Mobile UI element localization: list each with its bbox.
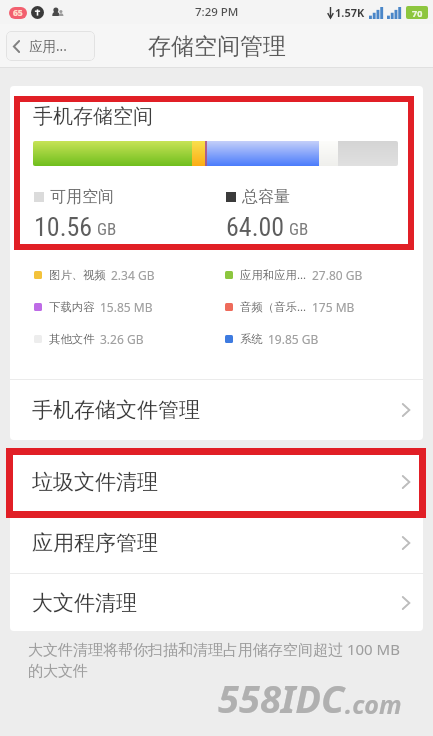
staticText: 27.80 GB [312, 267, 363, 283]
staticText: 系统 [240, 332, 263, 346]
staticText: 1.57K [335, 5, 365, 20]
staticText: 存储空间管理 [148, 32, 286, 61]
staticText: 可用空间 [50, 187, 114, 207]
staticText: 558IDC [218, 672, 345, 724]
staticText: 19.85 GB [268, 331, 319, 347]
staticText: GB [289, 219, 309, 239]
staticText: 下载内容 [49, 300, 95, 314]
button[interactable]: 垃圾文件清理 [10, 452, 423, 512]
button[interactable]: 应用程序管理 [10, 513, 423, 573]
staticText: 其他文件 [49, 332, 95, 346]
staticText: 手机存储文件管理 [32, 397, 200, 423]
staticText: 垃圾文件清理 [32, 469, 158, 495]
staticText: 图片、视频 [49, 268, 106, 282]
staticText: 应用... [29, 37, 67, 55]
staticText: 2.34 GB [111, 267, 155, 283]
staticText: 应用和应用... [240, 267, 307, 283]
staticText: 应用程序管理 [32, 530, 158, 556]
staticText: 7:29 PM [195, 4, 239, 20]
staticText: 65 [13, 7, 23, 19]
staticText: .com [345, 687, 402, 721]
staticText: 10.56 [34, 212, 93, 242]
staticText: 15.85 MB [100, 299, 153, 315]
staticText: 总容量 [242, 187, 290, 207]
staticText: 音频（音乐... [240, 299, 307, 315]
button[interactable]: 应用... [6, 31, 95, 61]
staticText: 175 MB [312, 299, 355, 315]
staticText: 大文件清理将帮你扫描和清理占用储存空间超过 100 MB 的大文件 [28, 639, 413, 680]
button[interactable]: 大文件清理 [10, 574, 423, 631]
staticText: 3.26 GB [100, 331, 144, 347]
staticText: 手机存储空间 [33, 104, 153, 129]
staticText: 64.00 [226, 212, 285, 242]
button[interactable]: 手机存储文件管理 [10, 380, 423, 440]
staticText: 大文件清理 [32, 590, 137, 616]
staticText: 70 [412, 7, 423, 19]
staticText: GB [97, 219, 117, 239]
